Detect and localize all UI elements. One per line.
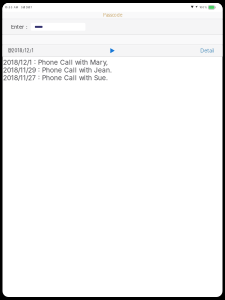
staticText: Enter : — [11, 24, 28, 30]
staticText: Passcode — [103, 13, 122, 18]
staticText: 10:53 AM — [5, 6, 18, 9]
staticText: Sat Dec 1 — [21, 6, 32, 9]
staticText: Detail — [200, 47, 214, 54]
button[interactable]: Play — [107, 45, 117, 56]
staticText: 2018/12/1 : Phone Call with Mary, 2018/1… — [3, 58, 112, 82]
button[interactable]: Detail — [200, 47, 214, 54]
staticText: @2018/12/1 — [7, 48, 33, 53]
staticText: 100% — [199, 6, 206, 9]
